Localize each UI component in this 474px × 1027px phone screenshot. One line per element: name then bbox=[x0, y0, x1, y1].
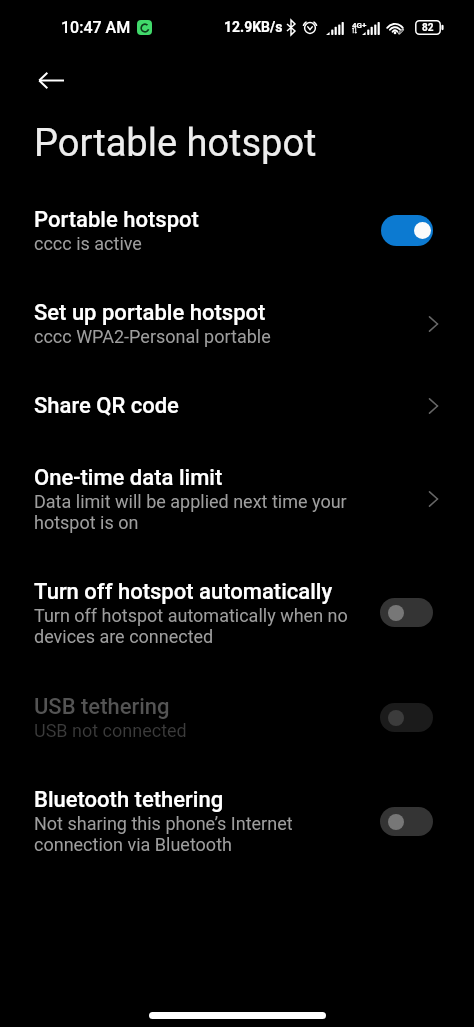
button[interactable]: Open bbox=[393, 476, 438, 522]
button[interactable]: Open bbox=[393, 301, 438, 347]
button[interactable]: Portable hotspot bbox=[0, 183, 474, 277]
button[interactable]: Set up portable hotspot bbox=[0, 277, 474, 370]
button[interactable]: Turn off hotspot automatically toggle bbox=[380, 598, 433, 627]
button[interactable]: Turn off hotspot automatically bbox=[0, 555, 474, 670]
staticText: Set up portable hotspot bbox=[34, 300, 266, 326]
staticText: Not sharing this phone’s Internet connec… bbox=[34, 813, 364, 855]
staticText: Share QR code bbox=[34, 393, 179, 419]
staticText: 10:47 AM bbox=[61, 18, 131, 37]
staticText: Portable hotspot bbox=[34, 207, 199, 233]
staticText: Data limit will be applied next time you… bbox=[34, 491, 364, 533]
staticText: Portable hotspot bbox=[34, 121, 317, 166]
staticText: Turn off hotspot automatically when no d… bbox=[34, 605, 364, 647]
button[interactable]: Open bbox=[393, 383, 438, 429]
staticText: cccc is active bbox=[34, 233, 142, 254]
staticText: USB tethering bbox=[34, 694, 170, 720]
staticText: 82 bbox=[422, 22, 434, 34]
staticText: 12.9KB/s bbox=[224, 19, 283, 35]
button[interactable]: Share QR code bbox=[0, 370, 474, 442]
button[interactable]: Bluetooth tethering toggle bbox=[380, 807, 433, 836]
button[interactable]: USB tethering bbox=[0, 670, 474, 764]
button[interactable]: Bluetooth tethering bbox=[0, 764, 474, 878]
button[interactable]: USB tethering toggle bbox=[380, 703, 433, 732]
staticText: Turn off hotspot automatically bbox=[34, 579, 333, 605]
button[interactable]: Portable hotspot toggle bbox=[381, 215, 433, 246]
staticText: Bluetooth tethering bbox=[34, 787, 224, 813]
staticText: USB not connected bbox=[34, 720, 187, 741]
staticText: 4G+ bbox=[352, 21, 367, 30]
button[interactable]: One-time data limit bbox=[0, 442, 474, 555]
button[interactable]: Back bbox=[27, 56, 75, 104]
staticText: One-time data limit bbox=[34, 465, 223, 491]
staticText: cccc WPA2-Personal portable bbox=[34, 326, 271, 347]
